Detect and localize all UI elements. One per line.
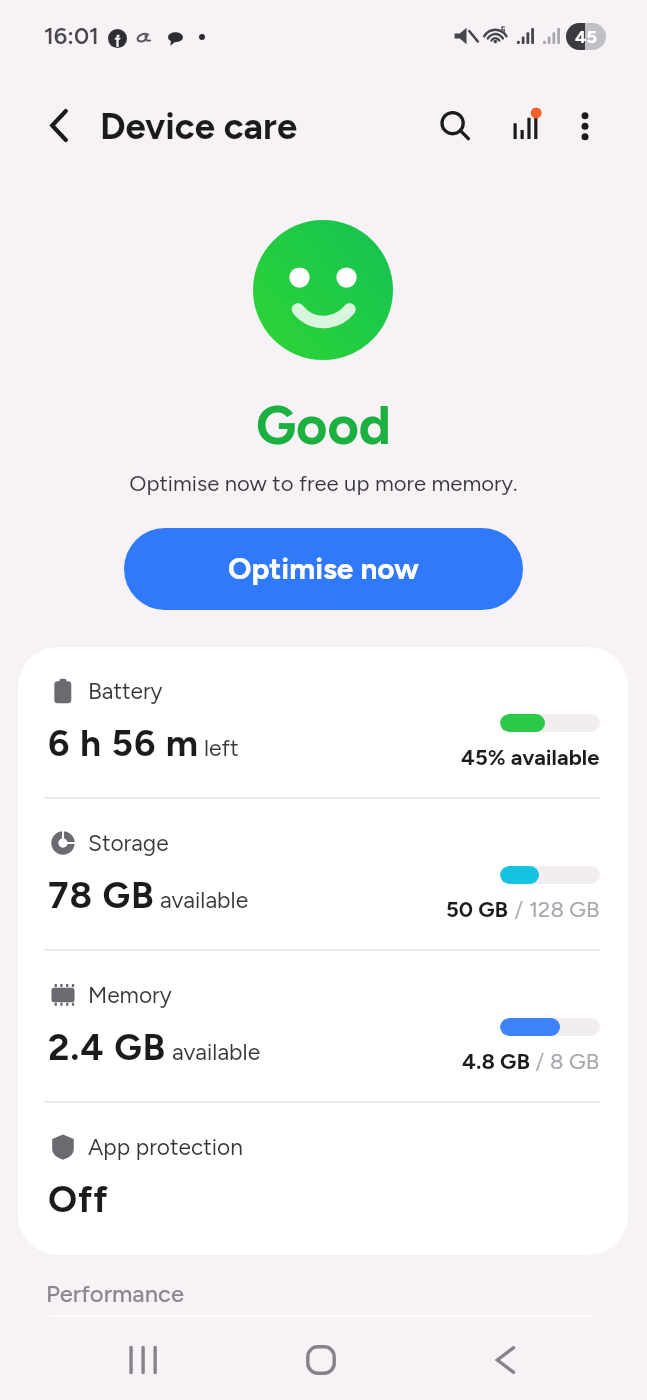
staticText: 45% available xyxy=(461,744,600,770)
staticText: Optimise now xyxy=(228,551,419,587)
button[interactable]: Diagnostics xyxy=(496,96,558,158)
button[interactable]: Search xyxy=(425,96,487,158)
button[interactable]: Recent apps xyxy=(111,1318,171,1400)
button[interactable]: Memory xyxy=(18,951,628,1103)
button[interactable]: Battery xyxy=(18,647,628,799)
staticText: 45 xyxy=(575,26,597,48)
button[interactable]: Back xyxy=(473,1318,533,1400)
staticText: 50 GB xyxy=(446,896,509,922)
staticText: 78 GB xyxy=(48,873,155,917)
staticText: Off xyxy=(48,1177,109,1221)
staticText: 128 GB xyxy=(529,896,600,922)
staticText: / xyxy=(530,1048,550,1074)
staticText: Device care xyxy=(100,104,298,148)
button[interactable]: Optimise now xyxy=(124,528,523,610)
staticText: 4.8 GB xyxy=(462,1048,530,1074)
staticText: 8 GB xyxy=(550,1048,600,1074)
staticText: 2.4 GB xyxy=(48,1025,167,1069)
staticText: available xyxy=(172,1038,261,1066)
staticText: Good xyxy=(0,393,647,458)
staticText: Memory xyxy=(88,981,172,1008)
staticText: 6 h 56 m xyxy=(48,721,199,765)
button[interactable]: Home xyxy=(291,1318,351,1400)
staticText: Storage xyxy=(88,829,169,856)
staticText: Optimise now to free up more memory. xyxy=(0,470,647,497)
staticText: 16:01 xyxy=(44,22,99,50)
staticText: Performance xyxy=(46,1279,184,1308)
staticText: left xyxy=(204,734,239,762)
staticText: App protection xyxy=(88,1133,243,1160)
button[interactable]: Storage xyxy=(18,799,628,951)
staticText: Battery xyxy=(88,677,163,704)
button[interactable]: More options xyxy=(554,96,616,158)
button[interactable]: App protection xyxy=(18,1103,628,1255)
staticText: available xyxy=(160,886,249,914)
button[interactable]: Navigate up xyxy=(27,93,91,157)
staticText: / xyxy=(509,896,529,922)
